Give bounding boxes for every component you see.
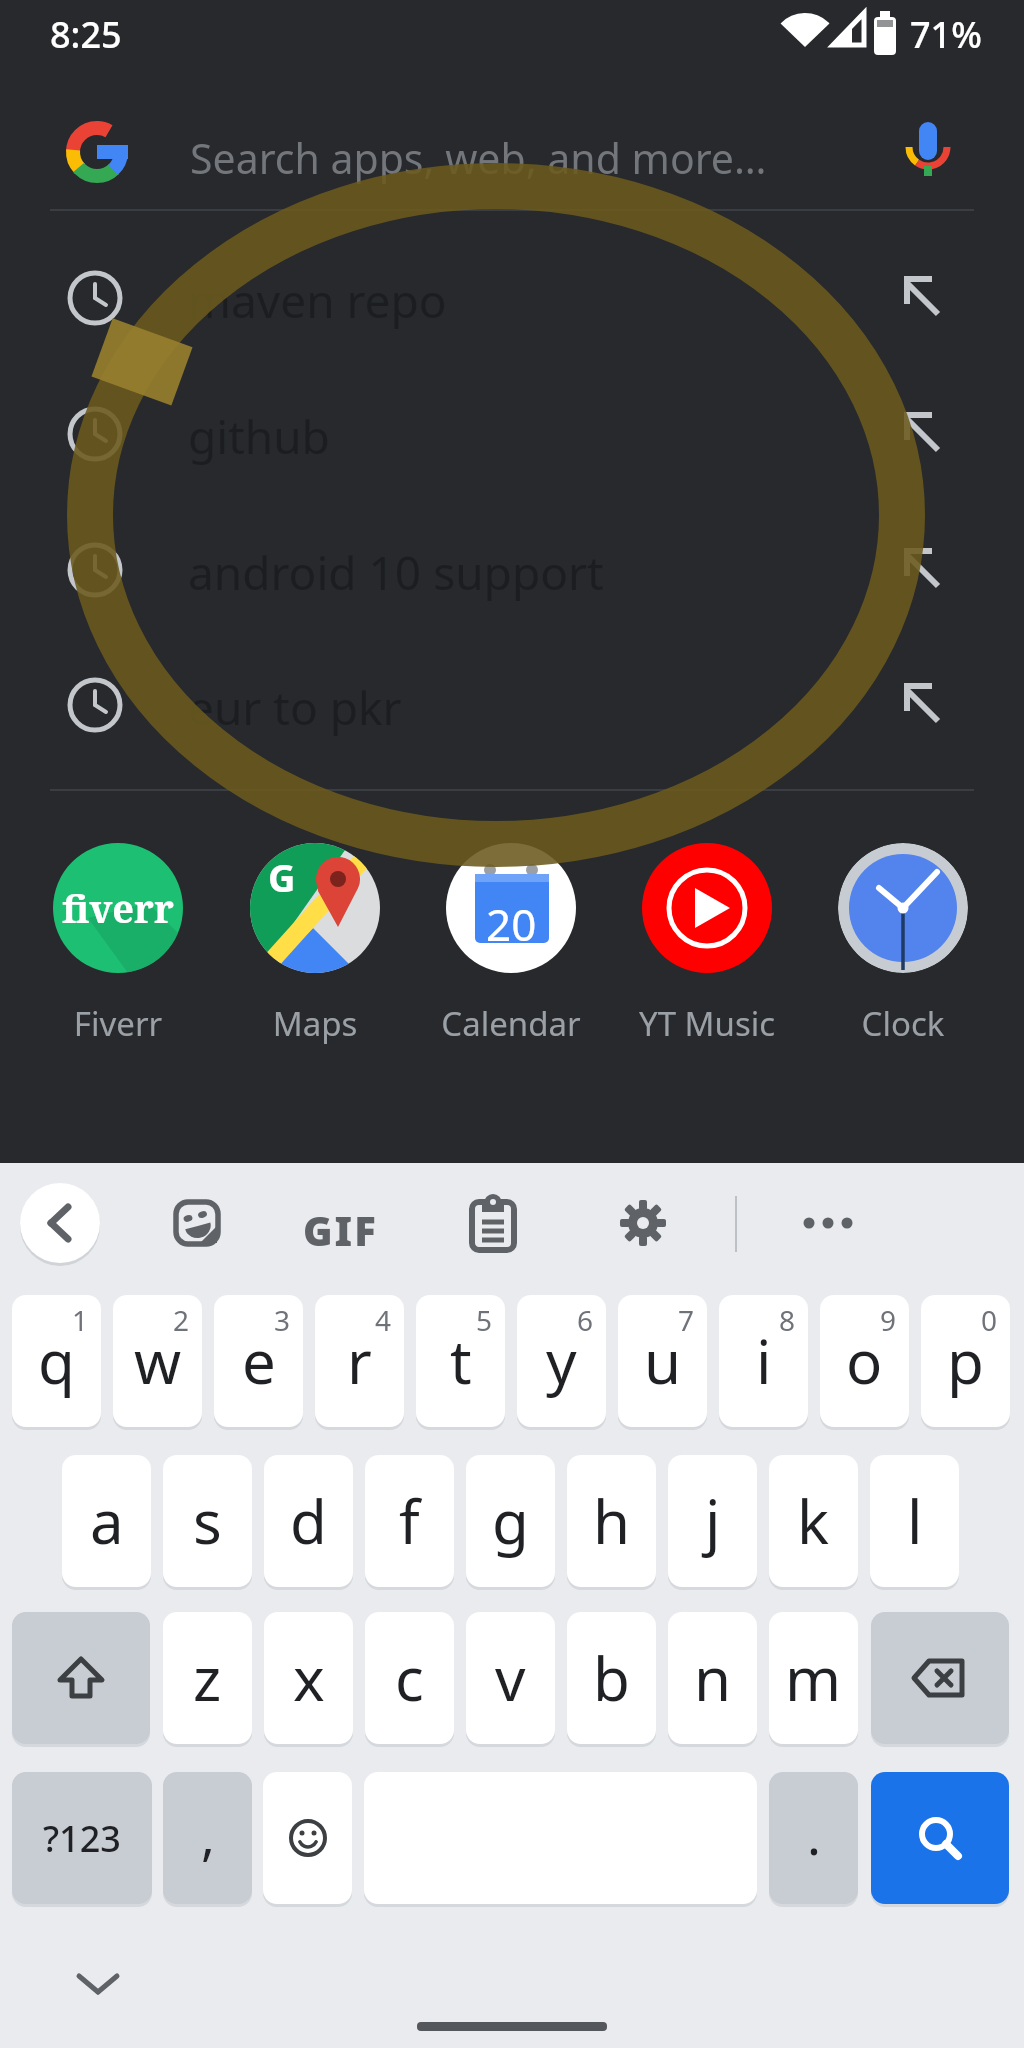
button[interactable]: a — [62, 1455, 151, 1587]
staticText: n — [694, 1637, 732, 1719]
button[interactable]: 20 — [431, 843, 591, 1063]
staticText: Maps — [235, 1001, 395, 1046]
button[interactable]: e — [214, 1295, 303, 1427]
staticText: 3 — [274, 1301, 291, 1339]
button[interactable] — [75, 1968, 121, 1998]
button[interactable]: y — [517, 1295, 606, 1427]
staticText: 8:25 — [50, 10, 122, 59]
button[interactable]: n — [668, 1612, 757, 1744]
staticText: github — [188, 405, 330, 468]
button[interactable] — [263, 1772, 352, 1904]
button[interactable]: Clock — [823, 843, 983, 1063]
staticText: Fiverr — [38, 1001, 198, 1046]
staticText: r — [347, 1320, 372, 1402]
staticText: p — [947, 1320, 984, 1402]
button[interactable]: i — [719, 1295, 808, 1427]
button[interactable]: t — [416, 1295, 505, 1427]
staticText: android 10 support — [188, 541, 604, 604]
staticText: fiverr — [62, 882, 174, 934]
staticText: maven repo — [188, 269, 447, 332]
staticText: , — [201, 1799, 215, 1870]
button[interactable]: r — [315, 1295, 404, 1427]
button[interactable]: c — [365, 1612, 454, 1744]
staticText: s — [193, 1480, 222, 1562]
button[interactable]: b — [567, 1612, 656, 1744]
staticText: . — [807, 1799, 821, 1870]
staticText: t — [450, 1320, 472, 1402]
button[interactable]: v — [466, 1612, 555, 1744]
staticText: b — [593, 1637, 630, 1719]
button[interactable]: . — [769, 1772, 858, 1904]
staticText: j — [705, 1480, 721, 1562]
button[interactable]: maven repo — [50, 243, 974, 353]
button[interactable]: j — [668, 1455, 757, 1587]
staticText: f — [399, 1480, 420, 1562]
button[interactable]: h — [567, 1455, 656, 1587]
staticText: q — [38, 1320, 75, 1402]
button[interactable]: ?123 — [12, 1772, 152, 1904]
button[interactable]: m — [769, 1612, 858, 1744]
staticText: ?123 — [43, 1814, 121, 1863]
button[interactable]: g — [466, 1455, 555, 1587]
button[interactable] — [902, 120, 958, 176]
staticText: YT Music — [627, 1001, 787, 1046]
staticText: i — [756, 1320, 772, 1402]
staticText: 20 — [486, 894, 537, 954]
button[interactable] — [12, 1612, 150, 1744]
button[interactable]: u — [618, 1295, 707, 1427]
button[interactable] — [620, 1200, 666, 1246]
staticText: Calendar — [431, 1001, 591, 1046]
button[interactable]: , — [163, 1772, 252, 1904]
button[interactable]: eur to pkr — [50, 650, 974, 760]
button[interactable]: f — [365, 1455, 454, 1587]
button[interactable]: w — [113, 1295, 202, 1427]
staticText: 5 — [476, 1301, 493, 1339]
button[interactable]: k — [769, 1455, 858, 1587]
button[interactable]: GIF — [303, 1203, 378, 1257]
button[interactable]: G — [235, 843, 395, 1063]
staticText: w — [134, 1320, 182, 1402]
button[interactable]: l — [870, 1455, 959, 1587]
staticText: z — [193, 1637, 222, 1719]
staticText: 9 — [880, 1301, 897, 1339]
staticText: 1 — [72, 1301, 89, 1339]
staticText: Search apps, web, and more… — [190, 130, 767, 186]
staticText: y — [546, 1320, 577, 1402]
button[interactable] — [795, 1203, 865, 1243]
staticText: eur to pkr — [188, 676, 402, 739]
staticText: v — [495, 1637, 526, 1719]
staticText: 2 — [173, 1301, 190, 1339]
button[interactable]: android 10 support — [50, 515, 974, 625]
button[interactable]: Search apps, web, and more… — [160, 110, 880, 196]
button[interactable] — [174, 1200, 220, 1246]
button[interactable]: github — [50, 379, 974, 489]
staticText: 7 — [678, 1301, 695, 1339]
button[interactable] — [871, 1612, 1009, 1744]
staticText: h — [593, 1480, 631, 1562]
staticText: m — [785, 1637, 842, 1719]
staticText: G — [268, 851, 296, 903]
staticText: g — [492, 1480, 529, 1562]
staticText: l — [907, 1480, 923, 1562]
staticText: d — [290, 1480, 327, 1562]
staticText: k — [797, 1480, 830, 1562]
staticText: 71% — [910, 10, 982, 59]
button[interactable]: q — [12, 1295, 101, 1427]
button[interactable]: o — [820, 1295, 909, 1427]
staticText: c — [395, 1637, 424, 1719]
staticText: o — [846, 1320, 883, 1402]
button[interactable]: fiverr — [38, 843, 198, 1063]
button[interactable] — [470, 1194, 520, 1252]
button[interactable]: p — [921, 1295, 1010, 1427]
button[interactable]: s — [163, 1455, 252, 1587]
staticText: 8 — [779, 1301, 796, 1339]
button[interactable]: x — [264, 1612, 353, 1744]
staticText: u — [644, 1320, 682, 1402]
button[interactable]: YT Music — [627, 843, 787, 1063]
button[interactable] — [20, 1183, 100, 1263]
button[interactable]: z — [163, 1612, 252, 1744]
button[interactable]: d — [264, 1455, 353, 1587]
button[interactable] — [871, 1772, 1009, 1904]
staticText: Clock — [823, 1001, 983, 1046]
